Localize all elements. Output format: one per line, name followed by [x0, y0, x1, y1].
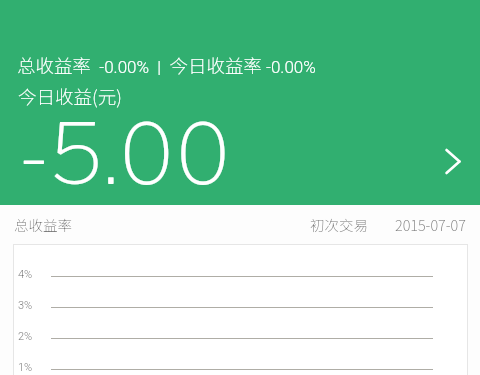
staticText: 2015-07-07	[395, 214, 466, 235]
staticText: 4%	[18, 268, 33, 281]
staticText: 初次交易	[310, 214, 368, 235]
staticText: -5.00	[18, 103, 231, 204]
staticText: 1%	[18, 361, 33, 374]
staticText: 总收益率 -0.00% | 今日收益率 -0.00%	[17, 52, 316, 79]
staticText: 今日收益(元)	[18, 83, 122, 110]
staticText: 2%	[18, 330, 33, 343]
button[interactable]: View earnings details	[433, 139, 477, 183]
button[interactable]: 总收益率 -0.00% | 今日收益率 -0.00%	[0, 0, 480, 205]
staticText: 总收益率	[14, 214, 72, 235]
staticText: 3%	[18, 299, 33, 312]
